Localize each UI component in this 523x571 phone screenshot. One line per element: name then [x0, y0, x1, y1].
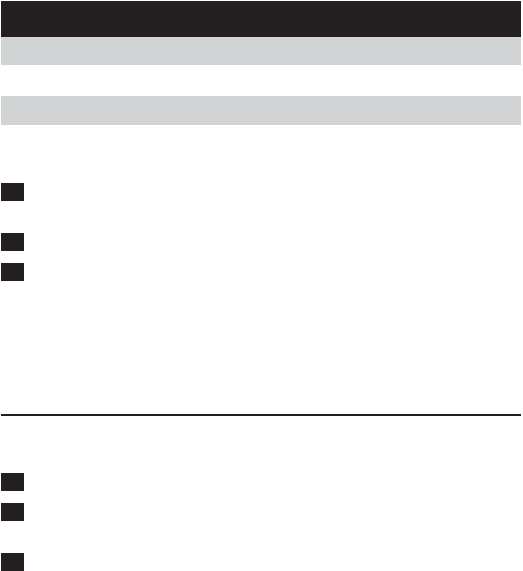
button[interactable]: List item 6 [1, 553, 521, 571]
button[interactable]: List item 1 [1, 183, 521, 201]
button[interactable]: List item 3 [1, 263, 521, 281]
button[interactable]: List item 5 [1, 503, 521, 521]
button[interactable]: List item 2 [1, 233, 521, 251]
button[interactable]: List item 4 [1, 473, 521, 491]
